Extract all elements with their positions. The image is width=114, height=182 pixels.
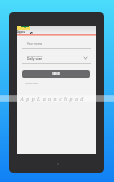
staticText: Your name [27, 42, 43, 46]
staticText: Receive alerts [27, 54, 43, 57]
staticText: Daily scan [27, 57, 43, 61]
button[interactable]: Account [30, 32, 33, 35]
staticText: SEND [52, 72, 60, 76]
staticText: AppLaunchpad [20, 95, 86, 102]
button[interactable]: SEND [22, 70, 90, 78]
button[interactable]: Privacy Policy [25, 82, 39, 85]
staticText: Appsu [17, 30, 26, 34]
